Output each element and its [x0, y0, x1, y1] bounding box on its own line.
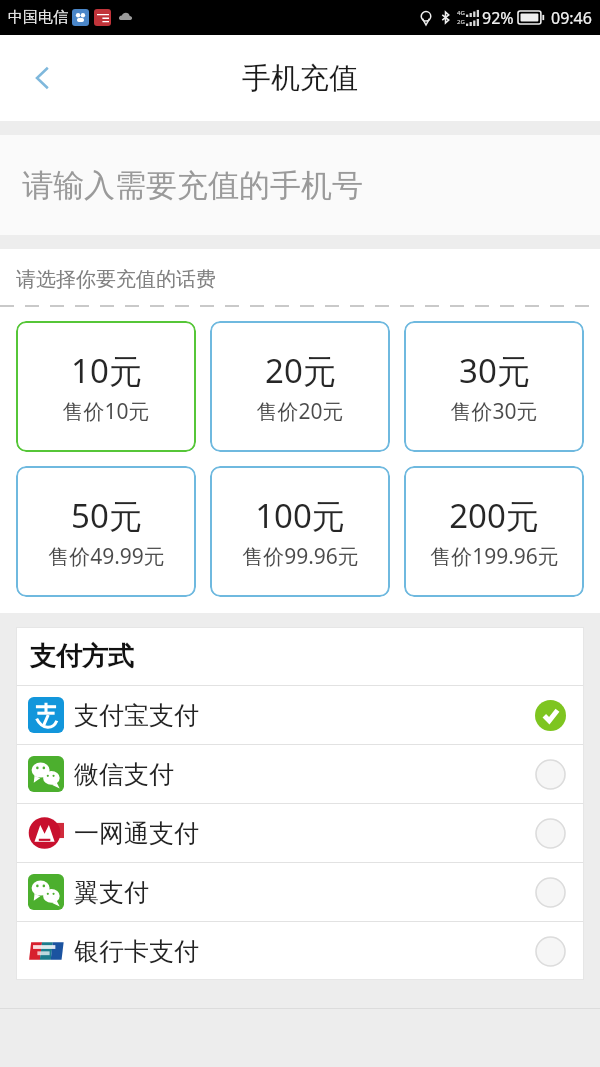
staticText: 售价20元: [256, 397, 344, 426]
staticText: 2G: [457, 18, 465, 26]
button[interactable]: 10元: [16, 321, 196, 452]
button[interactable]: 微信支付: [16, 745, 584, 803]
staticText: 微信支付: [74, 759, 174, 790]
button[interactable]: 支付宝支付: [16, 686, 584, 744]
staticText: 支付方式: [30, 640, 134, 673]
staticText: 售价49.99元: [48, 542, 165, 571]
button[interactable]: 银行卡支付: [16, 922, 584, 980]
button[interactable]: 100元: [210, 466, 390, 597]
button[interactable]: 50元: [16, 466, 196, 597]
staticText: 09:46: [551, 7, 592, 29]
button[interactable]: 30元: [404, 321, 584, 452]
button[interactable]: 翼支付: [16, 863, 584, 921]
button[interactable]: 一网通支付: [16, 804, 584, 862]
staticText: 手机充值: [242, 60, 358, 97]
staticText: 支付宝支付: [74, 700, 199, 731]
button[interactable]: 请输入需要充值的手机号: [0, 135, 600, 235]
staticText: 银行卡支付: [74, 936, 199, 967]
staticText: 中国电信: [8, 8, 68, 27]
button[interactable]: 20元: [210, 321, 390, 452]
staticText: 10元: [71, 348, 142, 393]
staticText: 请选择你要充值的话费: [16, 267, 216, 292]
staticText: 92%: [482, 7, 514, 29]
staticText: 一网通支付: [74, 818, 199, 849]
staticText: 售价99.96元: [242, 542, 359, 571]
staticText: 4G: [457, 9, 465, 17]
staticText: 售价10元: [62, 397, 150, 426]
button[interactable]: 200元: [404, 466, 584, 597]
button[interactable]: Back: [0, 35, 86, 121]
staticText: 20元: [265, 348, 336, 393]
staticText: 请输入需要充值的手机号: [22, 166, 363, 205]
staticText: 30元: [459, 348, 530, 393]
staticText: 售价30元: [450, 397, 538, 426]
staticText: 售价199.96元: [430, 542, 559, 571]
staticText: 100元: [255, 493, 345, 538]
staticText: 翼支付: [74, 877, 149, 908]
staticText: 50元: [71, 493, 142, 538]
staticText: 200元: [449, 493, 539, 538]
